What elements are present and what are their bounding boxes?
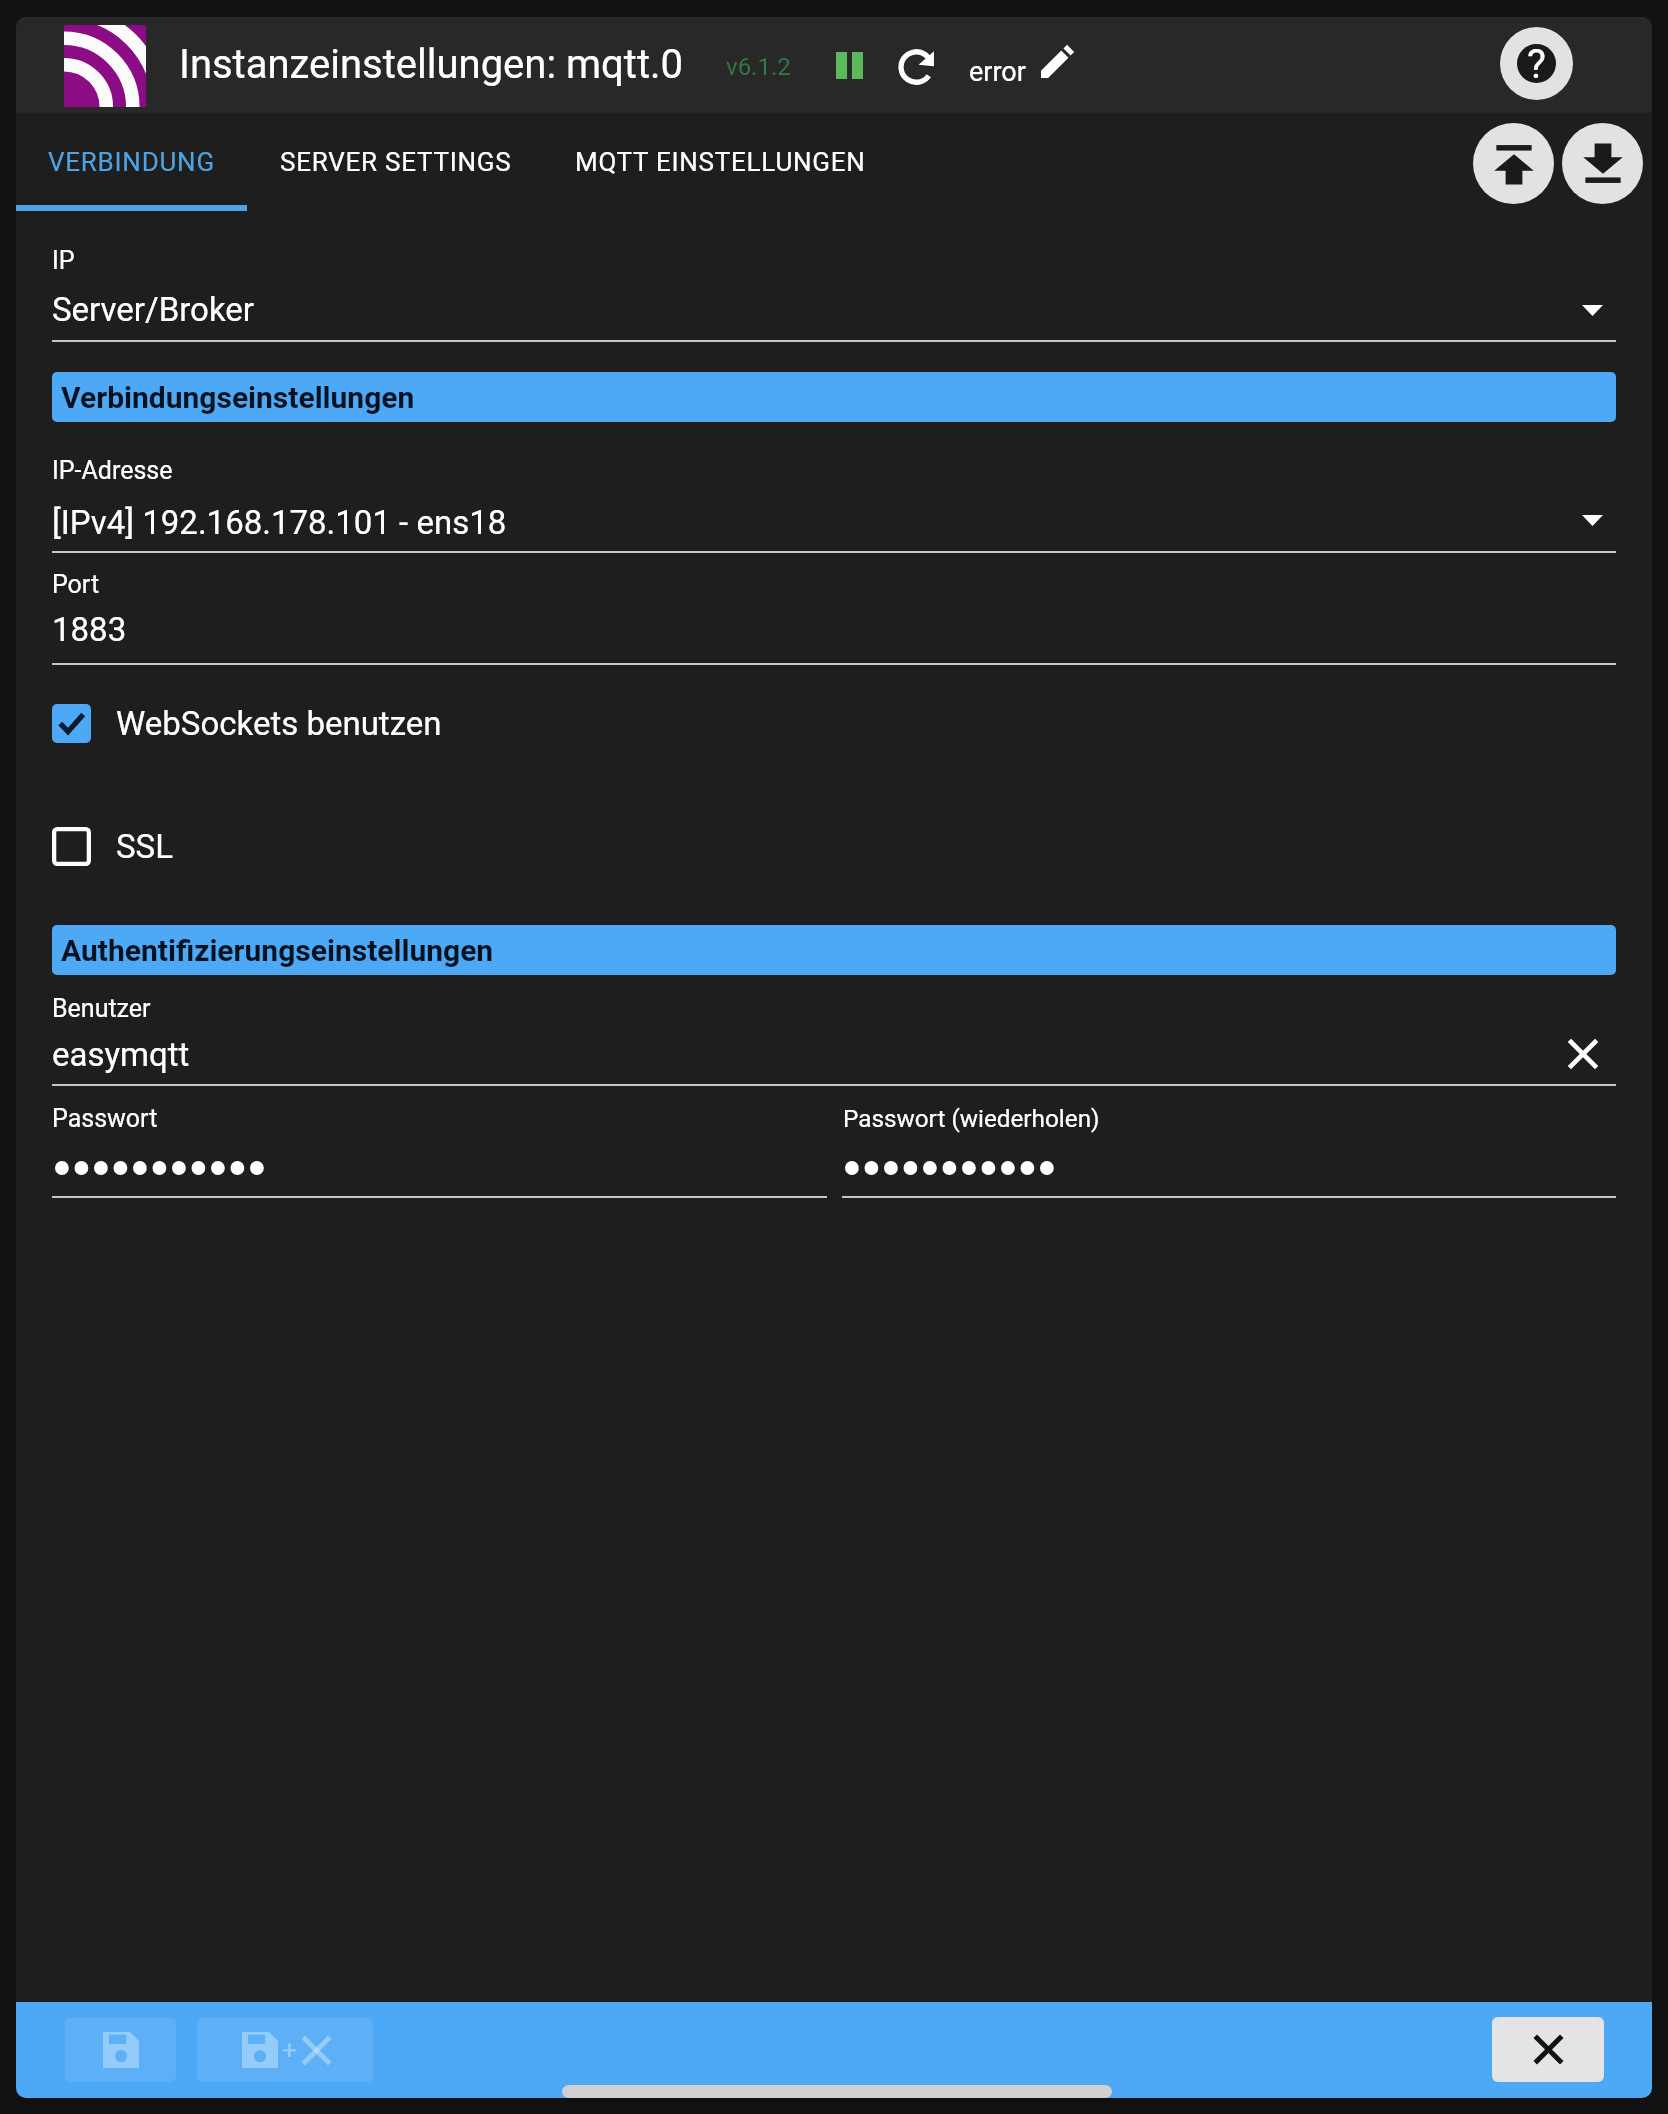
staticText: MQTT EINSTELLUNGEN [575, 147, 866, 177]
staticText: SERVER SETTINGS [280, 147, 512, 177]
button[interactable]: Clear user name [1560, 1031, 1606, 1077]
staticText: 1883 [52, 610, 127, 649]
button[interactable]: SSL [52, 820, 752, 872]
staticText: [IPv4] 192.168.178.101 - ens18 [52, 503, 507, 542]
button[interactable]: Help [1500, 27, 1573, 100]
button[interactable]: Save [65, 2018, 176, 2082]
button[interactable]: VERBINDUNG [16, 113, 247, 211]
button[interactable]: Restart instance [889, 38, 945, 94]
staticText: Server/Broker [52, 290, 254, 329]
staticText: Verbindungseinstellungen [61, 380, 415, 415]
staticText: ? [1527, 44, 1546, 80]
staticText: Passwort (wiederholen) [843, 1104, 1100, 1132]
button[interactable]: WebSockets benutzen [52, 697, 752, 749]
staticText: Passwort [52, 1104, 158, 1133]
staticText: Benutzer [52, 994, 151, 1023]
button[interactable]: Edit [1029, 34, 1083, 90]
staticText: Port [52, 570, 100, 599]
staticText: + [282, 2035, 297, 2065]
staticText: Instanzeinstellungen: mqtt.0 [179, 41, 684, 88]
staticText: WebSockets benutzen [116, 704, 442, 743]
button[interactable]: SERVER SETTINGS [261, 113, 531, 211]
staticText: IP [52, 246, 75, 275]
button[interactable]: Save and close [197, 2018, 373, 2082]
staticText: SSL [116, 827, 173, 866]
staticText: easymqtt [52, 1035, 190, 1074]
button[interactable]: Download configuration [1562, 123, 1643, 204]
button[interactable]: Upload configuration [1473, 123, 1554, 204]
staticText: error [969, 56, 1026, 88]
button[interactable]: Pause instance [820, 39, 878, 91]
staticText: v6.1.2 [726, 53, 791, 81]
staticText: Authentifizierungseinstellungen [61, 933, 494, 968]
staticText: IP-Adresse [52, 456, 173, 485]
staticText: VERBINDUNG [48, 147, 215, 177]
button[interactable]: MQTT EINSTELLUNGEN [557, 113, 884, 211]
button[interactable]: Close [1492, 2017, 1604, 2082]
